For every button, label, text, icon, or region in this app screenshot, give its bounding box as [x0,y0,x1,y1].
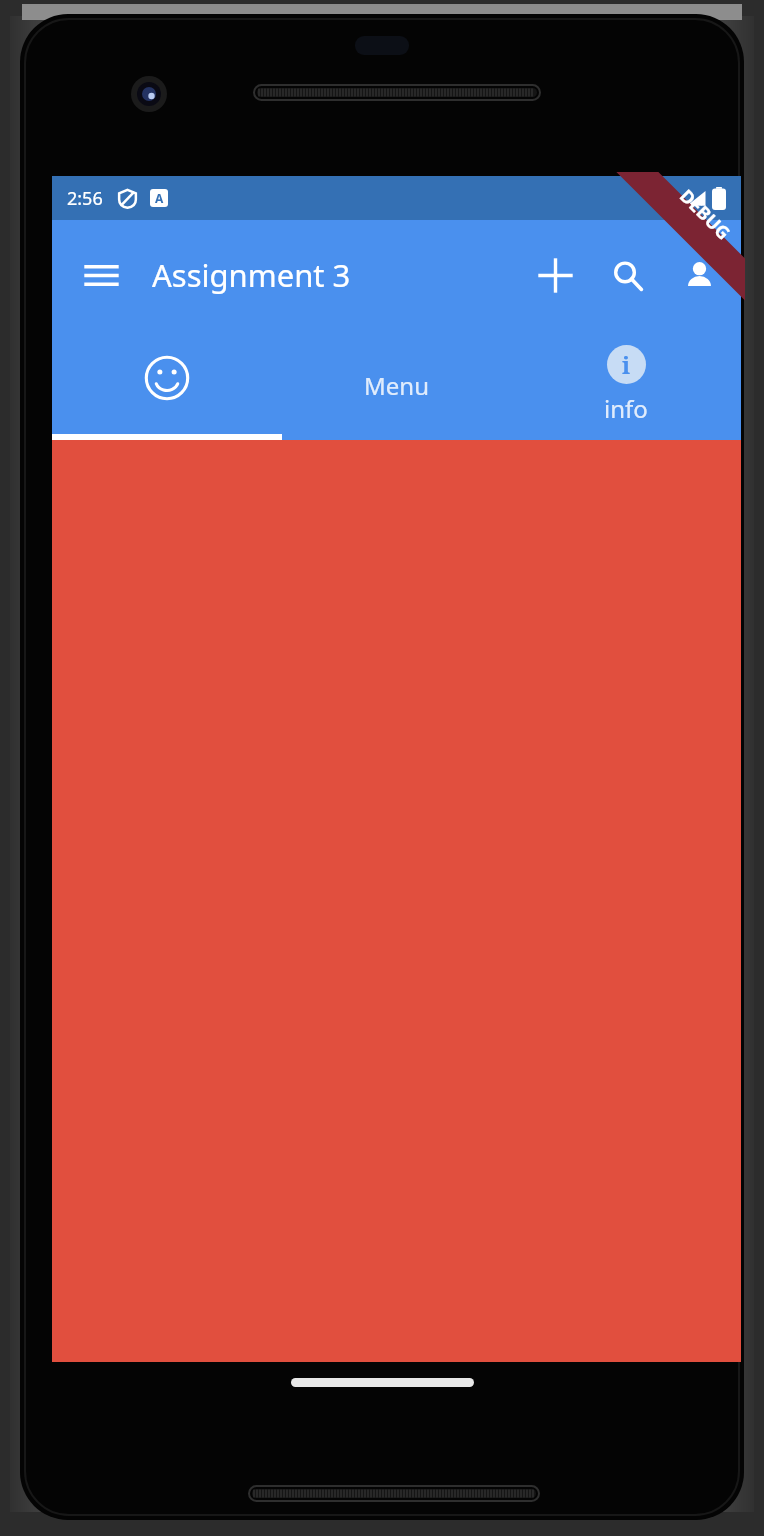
staticText: A [155,190,164,206]
button[interactable]: i [511,330,741,440]
staticText: info [604,392,648,425]
staticText: Assignment 3 [152,254,351,296]
button[interactable]: Account [669,245,729,305]
staticText: Menu [364,369,429,402]
staticText: 2:56 [67,186,103,211]
button[interactable]: Add [525,245,585,305]
staticText: i [622,349,631,380]
button[interactable]: Search [597,245,657,305]
staticText: DEBUG [674,184,736,245]
button[interactable]: Open navigation drawer [74,248,128,302]
button[interactable]: Mood tab [52,330,281,440]
button[interactable]: Menu [281,330,511,440]
